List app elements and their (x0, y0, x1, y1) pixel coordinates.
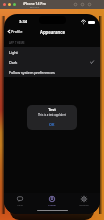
staticText: Follow system preferences (9, 70, 55, 75)
button[interactable]: Follow system preferences (4, 67, 100, 77)
staticText: iPhone 14 Pro (23, 1, 46, 6)
staticText: iOS 16.2 (30, 6, 39, 9)
button[interactable]: Appearance (40, 29, 65, 35)
staticText: Chat (17, 203, 23, 206)
staticText: Dark (9, 60, 18, 65)
button[interactable]: Toolbar action (87, 2, 92, 7)
staticText: APP THEME (9, 41, 25, 45)
staticText: Profile (48, 203, 56, 206)
staticText: Settings (79, 203, 89, 206)
button[interactable]: Profile (36, 196, 68, 206)
button[interactable]: Toolbar action (73, 2, 78, 7)
staticText: Test (27, 107, 77, 112)
button[interactable]: Toolbar action (80, 2, 85, 7)
button[interactable]: Chat (4, 196, 36, 206)
button[interactable]: Light (4, 47, 100, 57)
staticText: This is a test app/alert (27, 113, 77, 117)
button[interactable]: Close (3, 3, 6, 6)
button[interactable]: Minimise (8, 3, 11, 6)
staticText: OK (49, 122, 55, 127)
staticText: Light (9, 50, 18, 55)
button[interactable]: Zoom (13, 3, 16, 6)
staticText: Profile (11, 29, 23, 34)
button[interactable]: Profile (7, 29, 23, 34)
button[interactable]: Dark (4, 57, 100, 67)
button[interactable]: Settings (68, 196, 100, 206)
button[interactable]: OK (27, 120, 77, 129)
staticText: 3:34 (19, 19, 27, 24)
